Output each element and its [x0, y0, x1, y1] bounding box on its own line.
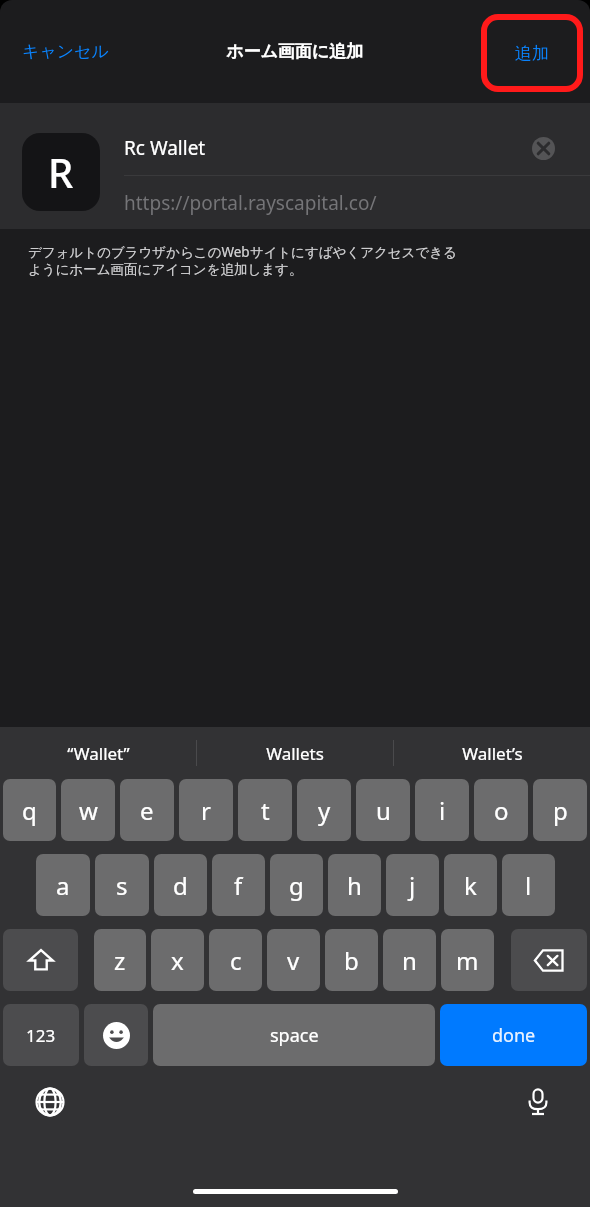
button[interactable]: q	[3, 779, 56, 841]
staticText: a	[56, 869, 70, 902]
button[interactable]: p	[533, 779, 587, 841]
staticText: g	[289, 869, 304, 902]
button[interactable]: Change keyboard language	[28, 1080, 72, 1124]
button[interactable]: キャンセル	[14, 33, 117, 70]
button[interactable]: n	[383, 929, 436, 991]
staticText: space	[270, 1023, 319, 1048]
staticText: i	[439, 794, 446, 827]
staticText: e	[140, 794, 154, 827]
staticText: o	[494, 794, 509, 827]
staticText: “Wallet”	[67, 742, 130, 765]
button[interactable]: Clear text	[526, 131, 560, 165]
button[interactable]: b	[325, 929, 378, 991]
staticText: c	[230, 944, 242, 977]
button[interactable]: z	[94, 929, 146, 991]
button[interactable]: 追加	[505, 37, 559, 70]
button[interactable]: t	[238, 779, 292, 841]
staticText: ようにホーム画面にアイコンを追加します。	[28, 261, 303, 278]
staticText: h	[347, 869, 362, 902]
staticText: Wallets	[266, 742, 324, 765]
staticText: キャンセル	[22, 41, 109, 62]
staticText: x	[171, 944, 184, 977]
staticText: Rc Wallet	[124, 135, 526, 161]
staticText: w	[79, 794, 98, 827]
staticText: Wallet’s	[462, 742, 523, 765]
button[interactable]: g	[270, 854, 323, 916]
staticText: v	[287, 944, 300, 977]
button[interactable]: Wallets	[197, 727, 393, 779]
button[interactable]: l	[502, 854, 555, 916]
staticText: https://portal.rayscapital.co/	[124, 190, 377, 216]
button[interactable]: d	[154, 854, 207, 916]
staticText: ホーム画面に追加	[226, 41, 364, 62]
button[interactable]: i	[415, 779, 469, 841]
button[interactable]: x	[151, 929, 204, 991]
staticText: m	[456, 944, 479, 977]
staticText: l	[525, 869, 532, 902]
staticText: r	[201, 794, 211, 827]
staticText: t	[261, 794, 270, 827]
button[interactable]: y	[297, 779, 351, 841]
button[interactable]: Backspace	[511, 929, 587, 991]
button[interactable]: Wallet’s	[394, 727, 590, 779]
staticText: u	[376, 794, 391, 827]
staticText: デフォルトのブラウザからこのWebサイトにすばやくアクセスできる	[28, 243, 457, 261]
staticText: n	[402, 944, 417, 977]
staticText: y	[318, 794, 331, 827]
button[interactable]: space	[153, 1004, 435, 1066]
staticText: d	[173, 869, 188, 902]
button[interactable]: Shift	[3, 929, 78, 991]
button[interactable]: e	[120, 779, 174, 841]
button[interactable]: s	[95, 854, 149, 916]
staticText: z	[114, 944, 126, 977]
staticText: done	[492, 1023, 536, 1048]
button[interactable]: h	[328, 854, 381, 916]
staticText: p	[553, 794, 568, 827]
button[interactable]: k	[444, 854, 497, 916]
button[interactable]: Dictation	[516, 1080, 560, 1124]
button[interactable]: a	[36, 854, 90, 916]
staticText: k	[464, 869, 477, 902]
staticText: f	[234, 869, 243, 902]
button[interactable]: Emoji	[84, 1004, 148, 1066]
staticText: s	[116, 869, 128, 902]
button[interactable]: o	[474, 779, 528, 841]
button[interactable]: 123	[3, 1004, 79, 1066]
button[interactable]: r	[179, 779, 233, 841]
button[interactable]: v	[267, 929, 320, 991]
button[interactable]: u	[356, 779, 410, 841]
staticText: 123	[26, 1024, 56, 1047]
staticText: 追加	[515, 43, 549, 64]
button[interactable]: f	[212, 854, 265, 916]
staticText: j	[409, 869, 416, 902]
button[interactable]: m	[441, 929, 494, 991]
button[interactable]: “Wallet”	[0, 727, 196, 779]
staticText: q	[22, 794, 37, 827]
button[interactable]: done	[440, 1004, 587, 1066]
button[interactable]: j	[386, 854, 439, 916]
staticText: R	[48, 145, 74, 199]
staticText: b	[344, 944, 359, 977]
button[interactable]: w	[61, 779, 115, 841]
button[interactable]: c	[209, 929, 262, 991]
